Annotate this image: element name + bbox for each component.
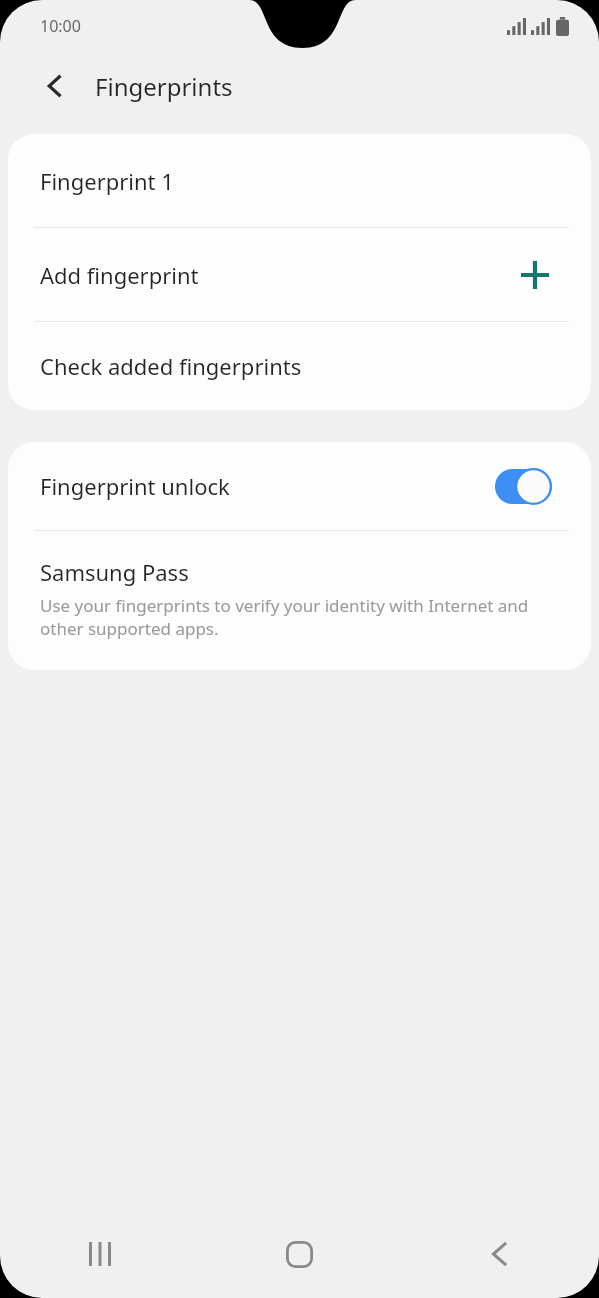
button[interactable]: Add fingerprint xyxy=(8,228,591,321)
staticText: Fingerprint 1 xyxy=(40,166,174,196)
button[interactable]: Back xyxy=(399,1210,599,1298)
button[interactable]: Home xyxy=(199,1210,399,1298)
button[interactable]: Recents xyxy=(0,1210,199,1298)
staticText: Fingerprint unlock xyxy=(40,471,230,501)
button[interactable]: Back xyxy=(30,61,80,111)
button[interactable]: Samsung Pass xyxy=(8,531,591,670)
button[interactable]: Fingerprint 1 xyxy=(8,134,591,227)
staticText: Add fingerprint xyxy=(40,260,199,290)
staticText: Use your fingerprints to verify your ide… xyxy=(40,594,561,640)
staticText: Fingerprints xyxy=(95,70,233,103)
staticText: Samsung Pass xyxy=(40,557,189,587)
button[interactable]: Fingerprint unlock toggle xyxy=(495,468,552,505)
button[interactable]: Fingerprint unlock xyxy=(8,442,591,530)
staticText: Check added fingerprints xyxy=(40,351,302,381)
staticText: 10:00 xyxy=(40,15,81,37)
button[interactable]: Check added fingerprints xyxy=(8,322,591,410)
